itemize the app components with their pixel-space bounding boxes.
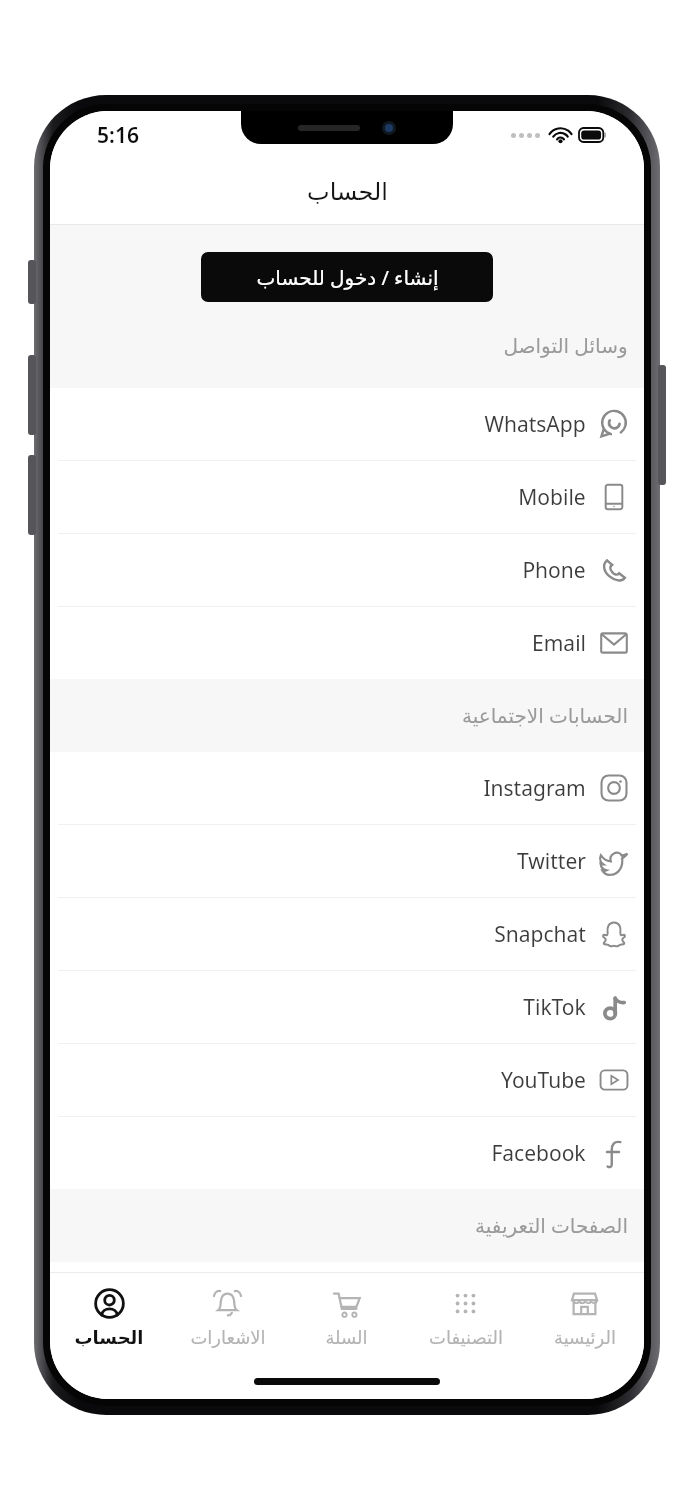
button[interactable]: TikTok (50, 971, 644, 1043)
button[interactable]: YouTube (50, 1044, 644, 1116)
button[interactable]: Email (50, 607, 644, 679)
staticText: التصنيفات (429, 1327, 503, 1348)
staticText: الحساب (74, 1327, 144, 1348)
other: السلة (330, 1287, 363, 1320)
button[interactable]: Instagram (50, 752, 644, 824)
button[interactable]: Snapchat (50, 898, 644, 970)
staticText: Email (532, 629, 586, 658)
staticText: الحساب (307, 178, 388, 206)
staticText: الحسابات الاجتماعية (462, 702, 628, 729)
staticText: Instagram (483, 774, 586, 803)
button[interactable]: Facebook (50, 1117, 644, 1189)
other: الاشعارات (211, 1287, 244, 1320)
staticText: Twitter (517, 847, 586, 876)
staticText: 5:16 (97, 121, 139, 150)
button[interactable]: Mobile (50, 461, 644, 533)
button[interactable]: إنشاء / دخول للحساب (201, 252, 493, 302)
staticText: Mobile (518, 483, 586, 512)
staticText: الصفحات التعريفية (475, 1212, 628, 1239)
staticText: YouTube (501, 1066, 586, 1095)
staticText: إنشاء / دخول للحساب (256, 264, 439, 291)
other: الرئيسية (568, 1287, 601, 1320)
staticText: وسائل التواصل (503, 332, 628, 359)
button[interactable]: التصنيفات (406, 1281, 525, 1354)
staticText: السلة (325, 1327, 368, 1348)
staticText: الاشعارات (190, 1327, 266, 1348)
staticText: Snapchat (494, 920, 586, 949)
button[interactable]: الرئيسية (525, 1281, 644, 1354)
staticText: الرئيسية (554, 1327, 616, 1348)
staticText: Phone (522, 556, 586, 585)
staticText: TikTok (523, 993, 586, 1022)
button[interactable]: WhatsApp (50, 388, 644, 460)
button[interactable]: الاشعارات (168, 1281, 287, 1354)
button[interactable]: السلة (287, 1281, 406, 1354)
staticText: Facebook (491, 1139, 586, 1168)
other: الحساب (93, 1287, 126, 1320)
other: التصنيفات (449, 1287, 482, 1320)
staticText: WhatsApp (484, 410, 586, 439)
button[interactable]: Phone (50, 534, 644, 606)
button[interactable]: Twitter (50, 825, 644, 897)
button[interactable]: الحساب (50, 1281, 168, 1354)
